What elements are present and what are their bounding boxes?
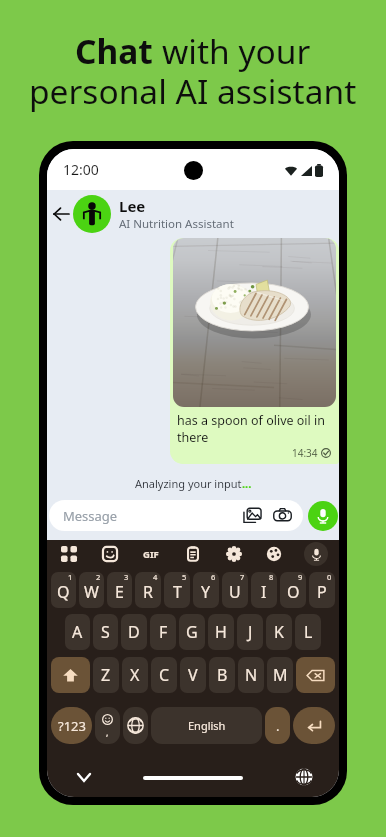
button[interactable]: Camera: [273, 506, 292, 525]
button[interactable]: Hide keyboard: [73, 766, 95, 788]
button[interactable]: W: [79, 572, 104, 608]
staticText: Q: [57, 581, 70, 603]
staticText: 5: [182, 572, 187, 582]
staticText: with your: [162, 28, 311, 74]
staticText: M: [273, 664, 288, 686]
staticText: 7: [240, 572, 245, 582]
button[interactable]: Enter: [293, 707, 335, 744]
button[interactable]: English: [151, 707, 262, 744]
button[interactable]: Stickers: [99, 543, 121, 565]
staticText: W: [84, 581, 99, 603]
staticText: 14:34: [292, 446, 318, 460]
button[interactable]: U: [222, 572, 248, 608]
button[interactable]: N: [238, 657, 264, 693]
button[interactable]: B: [209, 657, 235, 693]
button[interactable]: K: [266, 614, 292, 650]
button[interactable]: Y: [193, 572, 219, 608]
staticText: D: [128, 621, 140, 643]
staticText: P: [317, 581, 327, 603]
button[interactable]: F: [150, 614, 176, 650]
staticText: I: [261, 581, 267, 603]
button[interactable]: A: [65, 614, 90, 650]
staticText: 3: [124, 572, 129, 582]
button[interactable]: H: [208, 614, 234, 650]
button[interactable]: Language: [123, 707, 148, 744]
button[interactable]: Theme: [263, 543, 285, 565]
staticText: AI Nutrition Assistant: [119, 216, 234, 232]
staticText: F: [159, 621, 168, 643]
button[interactable]: D: [121, 614, 147, 650]
staticText: G: [186, 621, 198, 643]
button[interactable]: Voice message: [308, 501, 338, 531]
staticText: J: [248, 621, 253, 643]
button[interactable]: T: [164, 572, 190, 608]
staticText: Chat: [75, 28, 162, 74]
staticText: S: [101, 621, 110, 643]
staticText: K: [274, 621, 284, 643]
button[interactable]: Shift: [51, 657, 90, 693]
staticText: L: [304, 621, 313, 643]
button[interactable]: Clipboard: [182, 543, 204, 565]
button[interactable]: X: [122, 657, 148, 693]
staticText: V: [188, 664, 198, 686]
staticText: H: [215, 621, 227, 643]
staticText: 12:00: [63, 160, 99, 179]
button[interactable]: Emoji: [95, 707, 120, 744]
staticText: Analyzing your input: [135, 476, 242, 491]
button[interactable]: O: [280, 572, 306, 608]
staticText: personal AI assistant: [29, 68, 357, 114]
staticText: O: [287, 581, 300, 603]
staticText: Y: [201, 581, 211, 603]
button[interactable]: Backspace: [296, 657, 335, 693]
button[interactable]: Apps: [58, 543, 80, 565]
button[interactable]: Q: [51, 572, 76, 608]
button[interactable]: ?123: [51, 707, 92, 744]
staticText: 8: [269, 572, 274, 582]
button[interactable]: R: [135, 572, 161, 608]
staticText: T: [173, 581, 182, 603]
staticText: ?123: [58, 717, 86, 735]
button[interactable]: S: [93, 614, 118, 650]
button[interactable]: Change language: [293, 766, 315, 788]
staticText: 9: [298, 572, 303, 582]
staticText: U: [229, 581, 241, 603]
staticText: B: [217, 664, 228, 686]
button[interactable]: .: [265, 707, 290, 744]
button[interactable]: Z: [93, 657, 119, 693]
staticText: 1: [68, 572, 73, 582]
button[interactable]: Back: [47, 203, 69, 225]
staticText: R: [143, 581, 153, 603]
staticText: GIF: [143, 548, 159, 561]
staticText: Lee: [119, 196, 146, 216]
staticText: 6: [211, 572, 216, 582]
button[interactable]: G: [179, 614, 205, 650]
button[interactable]: GIF: [139, 542, 163, 566]
staticText: ,: [106, 726, 109, 738]
staticText: N: [245, 664, 258, 686]
button[interactable]: Gallery: [243, 506, 262, 525]
staticText: X: [130, 664, 140, 686]
staticText: 0: [327, 572, 332, 582]
button[interactable]: Settings: [223, 543, 245, 565]
staticText: 4: [153, 572, 158, 582]
staticText: C: [159, 664, 170, 686]
staticText: has a spoon of olive oil in there: [177, 412, 339, 445]
button[interactable]: P: [309, 572, 335, 608]
staticText: Z: [101, 664, 111, 686]
button[interactable]: C: [151, 657, 177, 693]
staticText: 2: [96, 572, 101, 582]
staticText: E: [115, 581, 124, 603]
staticText: English: [188, 718, 226, 733]
button[interactable]: Message: [49, 500, 303, 531]
button[interactable]: V: [180, 657, 206, 693]
staticText: .: [276, 717, 280, 735]
button[interactable]: E: [107, 572, 132, 608]
button[interactable]: M: [267, 657, 293, 693]
button[interactable]: J: [237, 614, 263, 650]
button[interactable]: L: [295, 614, 321, 650]
button[interactable]: Voice input: [304, 542, 328, 566]
staticText: ...: [242, 476, 252, 491]
staticText: A: [72, 621, 83, 643]
staticText: Message: [63, 507, 118, 525]
button[interactable]: I: [251, 572, 277, 608]
